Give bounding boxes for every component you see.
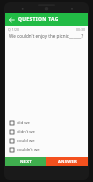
staticText: We couldn't enjoy the picnic______? [9, 33, 84, 39]
staticText: 00:30 [76, 27, 85, 32]
button[interactable]: NEXT [5, 157, 46, 166]
button[interactable]: ANSWER [46, 157, 88, 166]
staticText: NEXT [20, 159, 32, 165]
button[interactable]: didn't we [10, 127, 84, 136]
staticText: could we [17, 138, 35, 144]
staticText: QUESTION TAG [18, 16, 59, 23]
button[interactable]: Back [5, 13, 18, 26]
button[interactable]: couldn't we [10, 145, 84, 154]
button[interactable]: did we [10, 118, 84, 127]
staticText: ANSWER [58, 159, 77, 165]
staticText: Q 1/20 [8, 27, 19, 32]
button[interactable]: could we [10, 136, 84, 145]
staticText: didn't we [17, 129, 35, 135]
staticText: did we [17, 120, 30, 126]
staticText: couldn't we [17, 147, 40, 153]
